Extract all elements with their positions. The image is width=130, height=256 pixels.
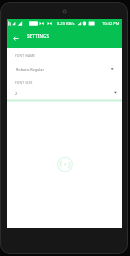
staticText: 10:32 PM [102,21,120,26]
staticText: 8.20 KB/s [57,21,75,26]
button[interactable] [7,49,122,73]
staticText: SETTINGS [27,33,50,39]
staticText: 2 [15,91,18,96]
button[interactable] [7,75,122,99]
staticText: FONT NAME [15,53,36,57]
button[interactable]: Back [7,28,24,48]
staticText: Roboto-Regular [16,67,45,72]
staticText: FONT SIZE [15,80,33,84]
